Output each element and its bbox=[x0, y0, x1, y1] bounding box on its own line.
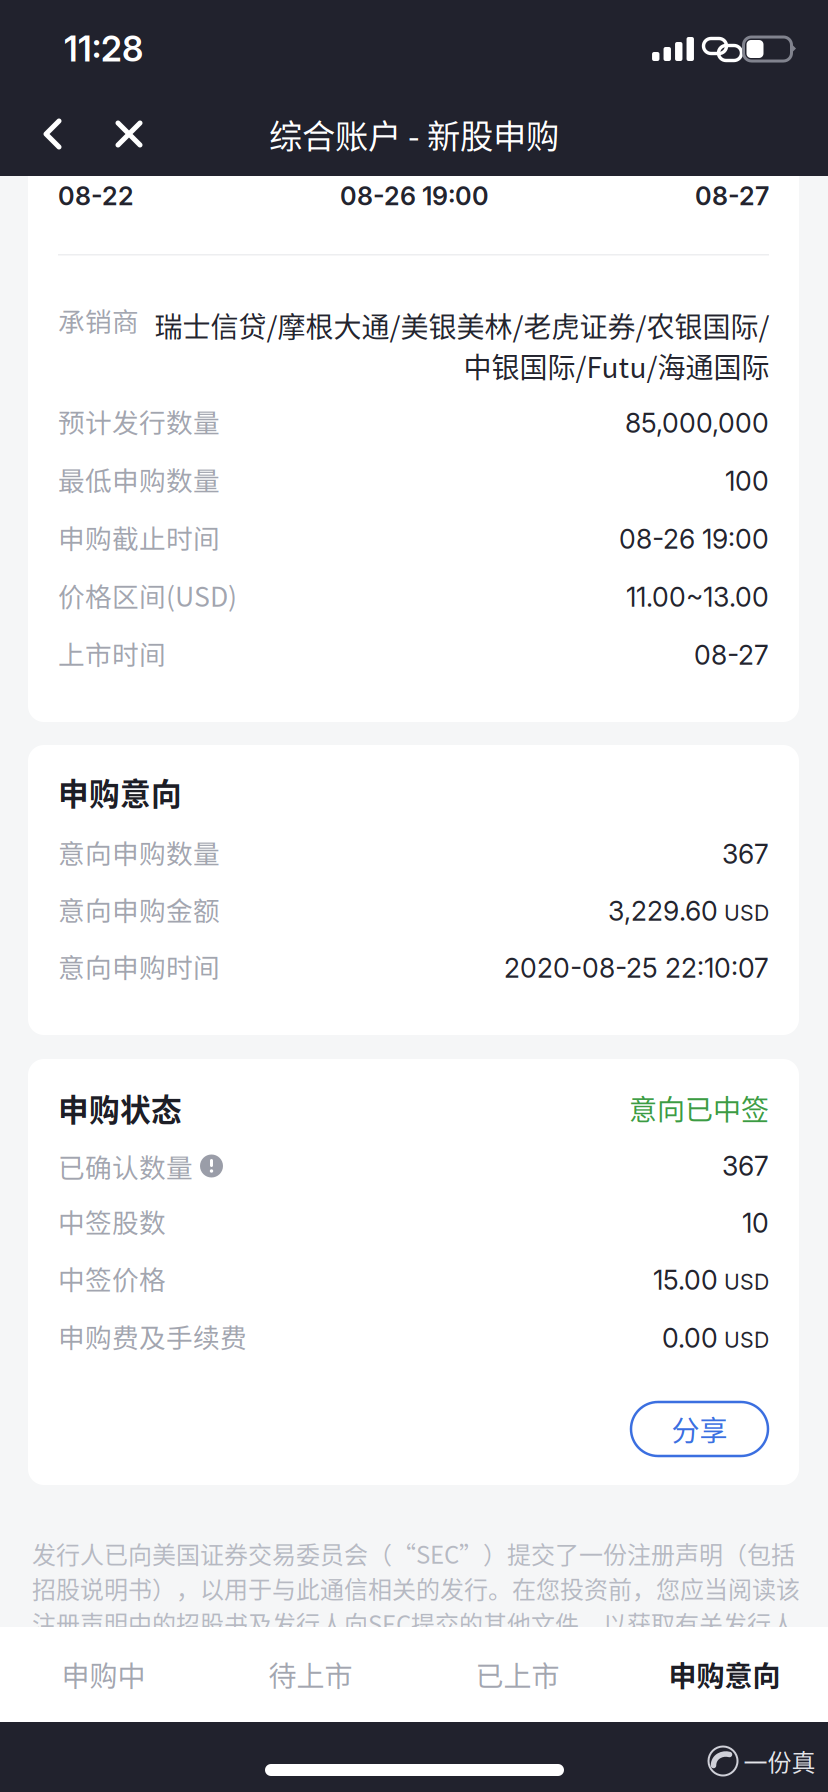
staticText: 一份真 bbox=[743, 1744, 815, 1778]
staticText: 承销商 bbox=[58, 301, 139, 339]
button[interactable]: Back bbox=[25, 92, 83, 176]
staticText: 2020-08-25 22:10:07 bbox=[504, 952, 769, 984]
staticText: 08-27 bbox=[695, 181, 769, 211]
staticText: 367 bbox=[722, 1150, 769, 1182]
staticText: 申购意向 bbox=[668, 1654, 780, 1695]
staticText: 意向申购时间 bbox=[58, 947, 220, 985]
staticText: 申购截止时间 bbox=[58, 518, 220, 556]
staticText: 申购中 bbox=[61, 1654, 145, 1695]
button[interactable]: Close bbox=[100, 92, 158, 176]
staticText: 中签价格 bbox=[58, 1259, 166, 1297]
staticText: 综合账户 - 新股申购 bbox=[269, 110, 559, 158]
staticText: 11.00~13.00 bbox=[626, 581, 769, 613]
staticText: 已上市 bbox=[475, 1654, 559, 1695]
staticText: 367 bbox=[722, 838, 769, 870]
staticText: 申购状态 bbox=[58, 1086, 182, 1130]
staticText: 08-22 bbox=[58, 181, 134, 211]
staticText: 0.00 bbox=[662, 1322, 718, 1354]
staticText: 分享 bbox=[671, 1409, 727, 1449]
staticText: USD bbox=[718, 1327, 769, 1353]
staticText: 08-27 bbox=[694, 639, 769, 671]
staticText: 预计发行数量 bbox=[58, 402, 220, 440]
button[interactable]: 申购中 bbox=[0, 1627, 207, 1722]
button[interactable]: 已上市 bbox=[414, 1627, 621, 1722]
staticText: 申购意向 bbox=[58, 770, 182, 814]
staticText: 已确认数量 bbox=[58, 1147, 193, 1185]
staticText: 10 bbox=[742, 1207, 769, 1239]
staticText: USD bbox=[718, 900, 769, 926]
staticText: 3,229.60 bbox=[608, 895, 718, 927]
staticText: 价格区间(USD) bbox=[58, 576, 237, 614]
staticText: 85,000,000 bbox=[625, 407, 769, 439]
button[interactable]: 申购意向 bbox=[621, 1627, 828, 1722]
staticText: 待上市 bbox=[268, 1654, 352, 1695]
button[interactable]: 分享 bbox=[631, 1402, 768, 1456]
staticText: 瑞士信贷/摩根大通/美银美林/老虎证券/农银国际/中银国际/Futu/海通国际 bbox=[154, 305, 769, 386]
staticText: 意向已中签 bbox=[629, 1088, 769, 1128]
staticText: 意向申购金额 bbox=[58, 890, 220, 928]
staticText: 08-26 19:00 bbox=[619, 523, 769, 555]
staticText: USD bbox=[718, 1269, 769, 1295]
staticText: 最低申购数量 bbox=[58, 460, 220, 498]
staticText: 08-26 19:00 bbox=[340, 181, 489, 211]
staticText: 发行人已向美国证券交易委员会（“SEC”）提交了一份注册声明（包括招股说明书），… bbox=[32, 1536, 800, 1675]
staticText: 上市时间 bbox=[58, 634, 166, 672]
staticText: 15.00 bbox=[653, 1264, 718, 1296]
staticText: 意向申购数量 bbox=[58, 833, 220, 871]
button[interactable]: 待上市 bbox=[207, 1627, 414, 1722]
staticText: 申购费及手续费 bbox=[58, 1317, 247, 1355]
staticText: 11:28 bbox=[64, 28, 143, 70]
staticText: 中签股数 bbox=[58, 1202, 166, 1240]
staticText: 100 bbox=[725, 465, 769, 497]
